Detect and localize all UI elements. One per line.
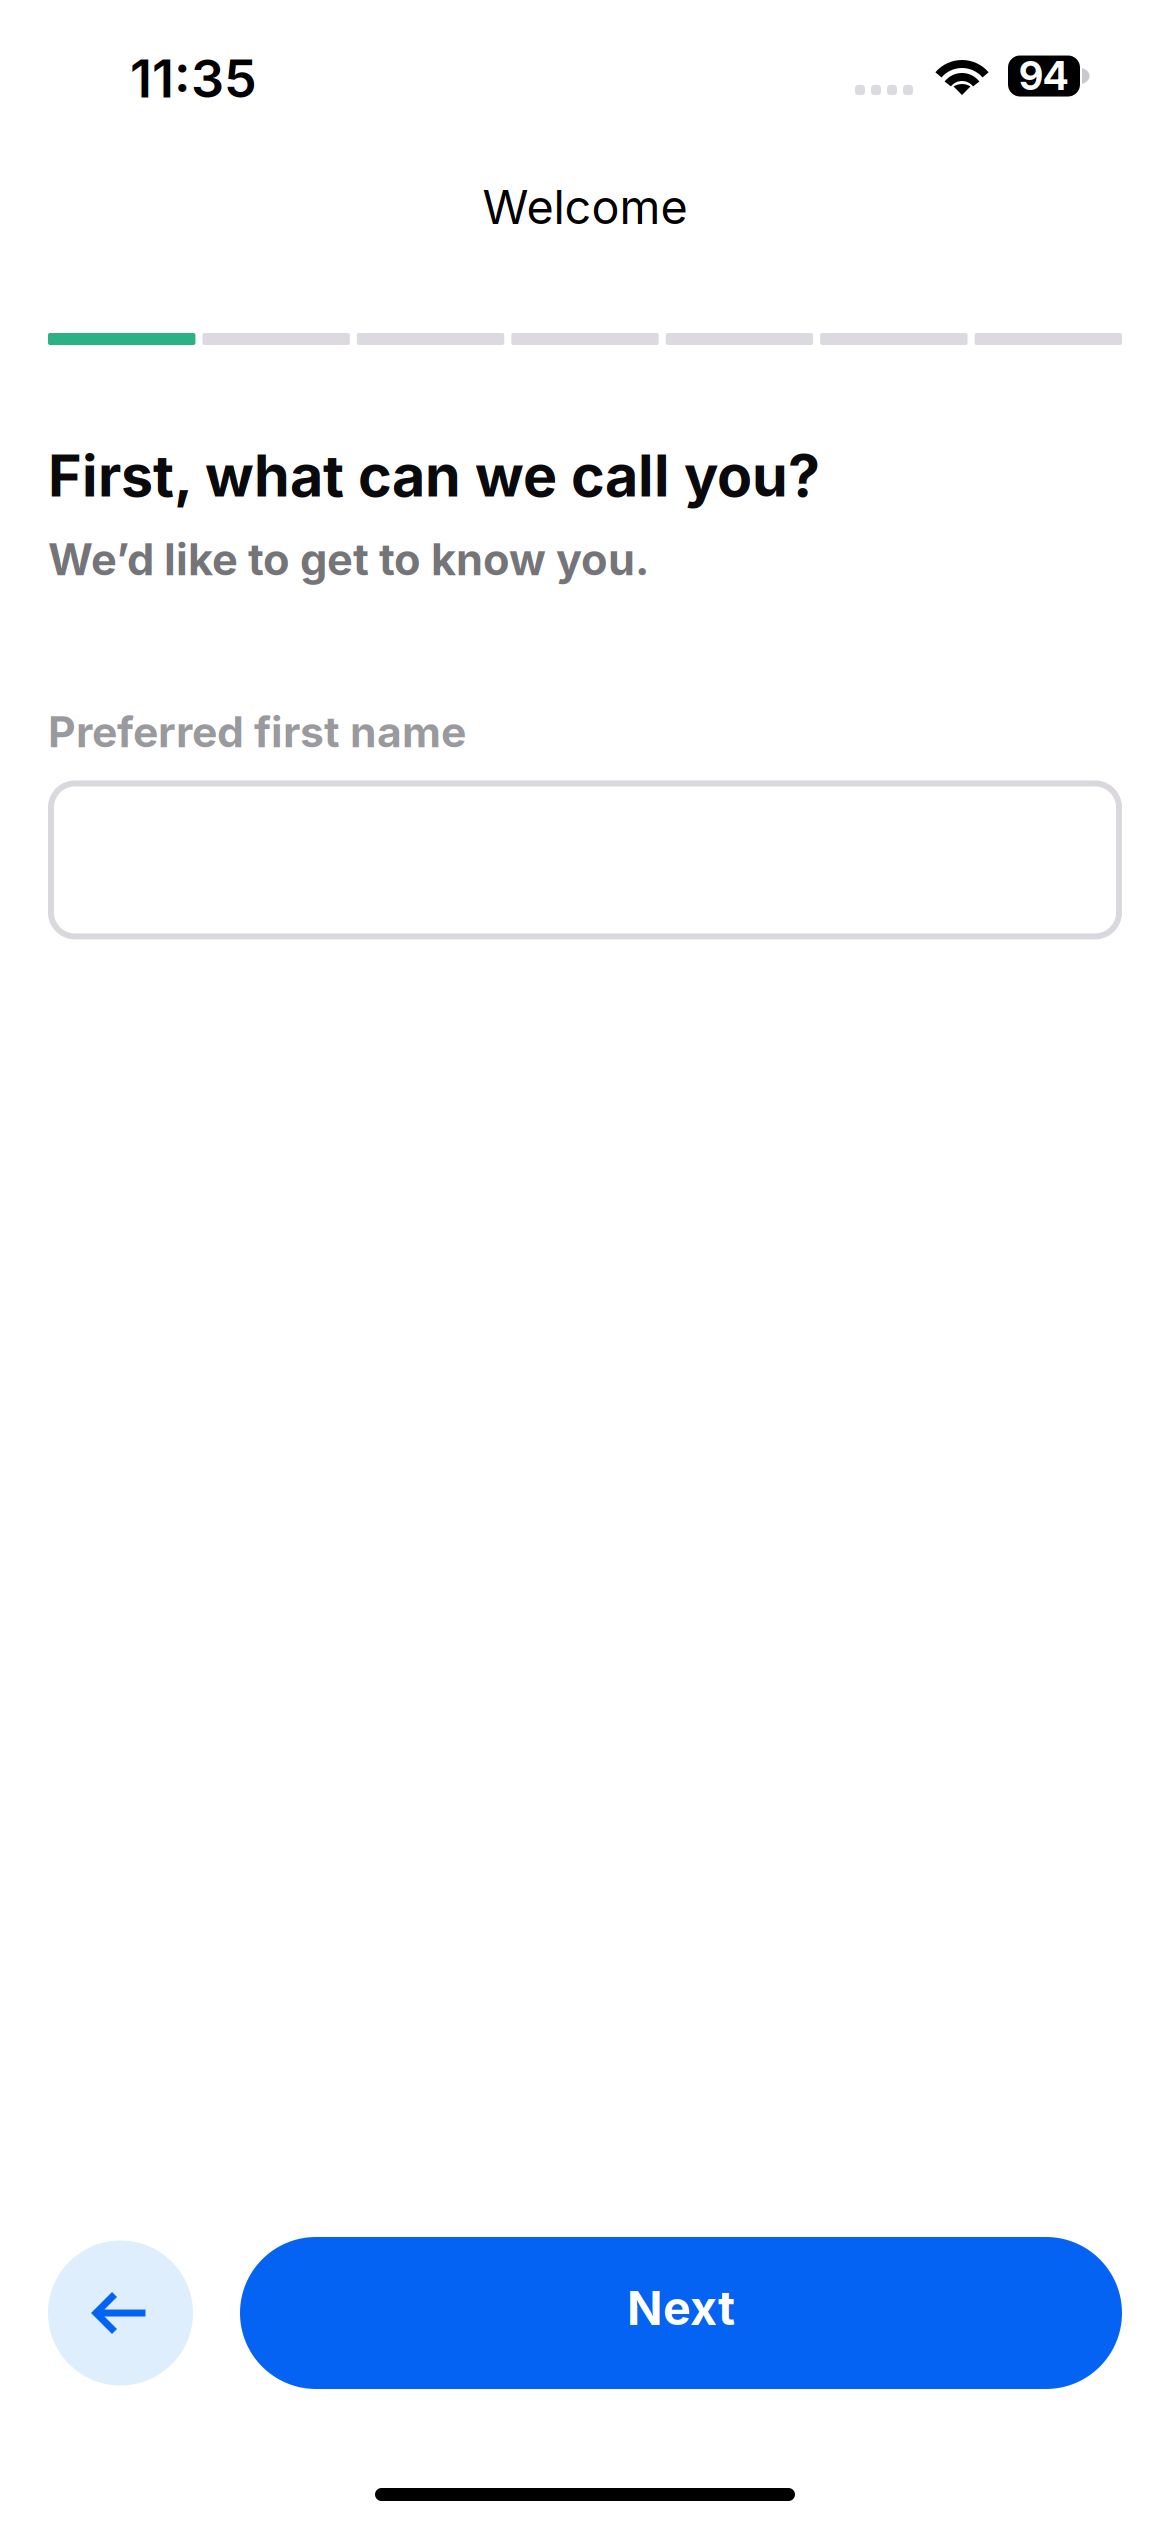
staticText: Welcome xyxy=(482,179,687,235)
staticText: First, what can we call you? xyxy=(48,441,820,510)
button[interactable]: Back xyxy=(48,2240,193,2385)
button[interactable]: Next xyxy=(240,2237,1122,2389)
staticText: 94 xyxy=(1019,53,1069,99)
button[interactable]: Preferred first name xyxy=(48,780,1122,939)
staticText: Next xyxy=(627,2280,735,2336)
staticText: 11:35 xyxy=(130,47,257,110)
staticText: We’d like to get to know you. xyxy=(48,533,649,586)
staticText: Preferred first name xyxy=(48,706,466,757)
